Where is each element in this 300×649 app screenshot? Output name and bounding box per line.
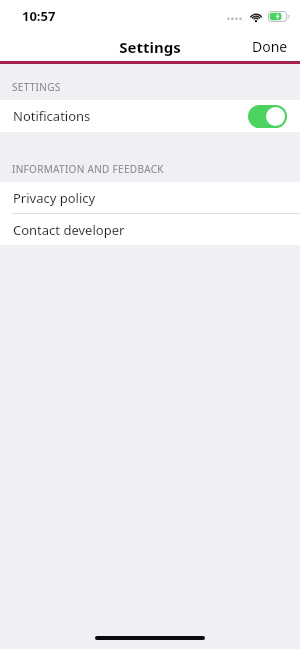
button[interactable]: Privacy policy (0, 182, 300, 213)
button[interactable]: Notifications (0, 100, 300, 132)
staticText: Settings (119, 37, 181, 57)
staticText: Done (252, 37, 288, 56)
staticText: Privacy policy (13, 189, 96, 207)
staticText: SETTINGS (12, 80, 61, 94)
button[interactable]: Contact developer (0, 214, 300, 245)
button[interactable]: Notifications toggle, on (248, 105, 287, 128)
button[interactable]: Done (240, 33, 300, 60)
staticText: INFORMATION AND FEEDBACK (12, 162, 164, 176)
staticText: Notifications (13, 107, 91, 125)
staticText: Contact developer (13, 221, 125, 239)
staticText: 10:57 (22, 7, 56, 25)
